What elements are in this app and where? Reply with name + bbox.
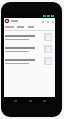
button[interactable]: Back — [12, 98, 18, 104]
button[interactable]: App logo — [5, 19, 9, 23]
button[interactable]: More options — [51, 20, 54, 23]
button[interactable] — [4, 55, 55, 67]
button[interactable]: Search — [41, 20, 44, 23]
button[interactable] — [4, 31, 55, 43]
button[interactable]: Recents — [41, 98, 47, 104]
button[interactable]: Home — [27, 98, 33, 104]
button[interactable]: Add — [46, 20, 49, 23]
button[interactable] — [4, 43, 55, 55]
